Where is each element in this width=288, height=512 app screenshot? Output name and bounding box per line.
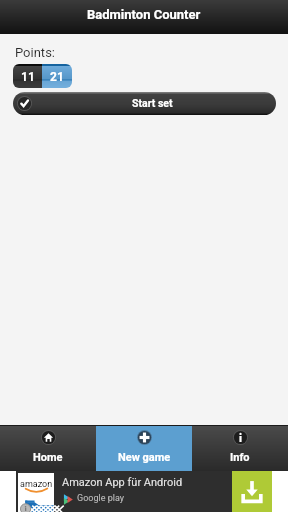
button[interactable]: Start set [13, 92, 276, 115]
staticText: amazon [20, 479, 53, 490]
staticText: Home [33, 451, 63, 464]
button[interactable]: New game [96, 426, 192, 471]
button[interactable]: Home [0, 426, 96, 471]
staticText: Points: [15, 45, 55, 60]
staticText: Info [230, 451, 250, 464]
button[interactable]: Info [192, 426, 288, 471]
button[interactable]: Install [232, 471, 272, 512]
staticText: 21 [50, 70, 64, 84]
staticText: Google play [77, 493, 124, 504]
staticText: 11 [21, 70, 35, 84]
button[interactable]: 21 [42, 64, 72, 88]
staticText: Amazon App für Android [62, 476, 183, 489]
staticText: New game [118, 451, 171, 464]
staticText: Start set [132, 97, 173, 109]
button[interactable]: 11 [13, 64, 42, 88]
staticText: Badminton Counter [87, 7, 201, 22]
